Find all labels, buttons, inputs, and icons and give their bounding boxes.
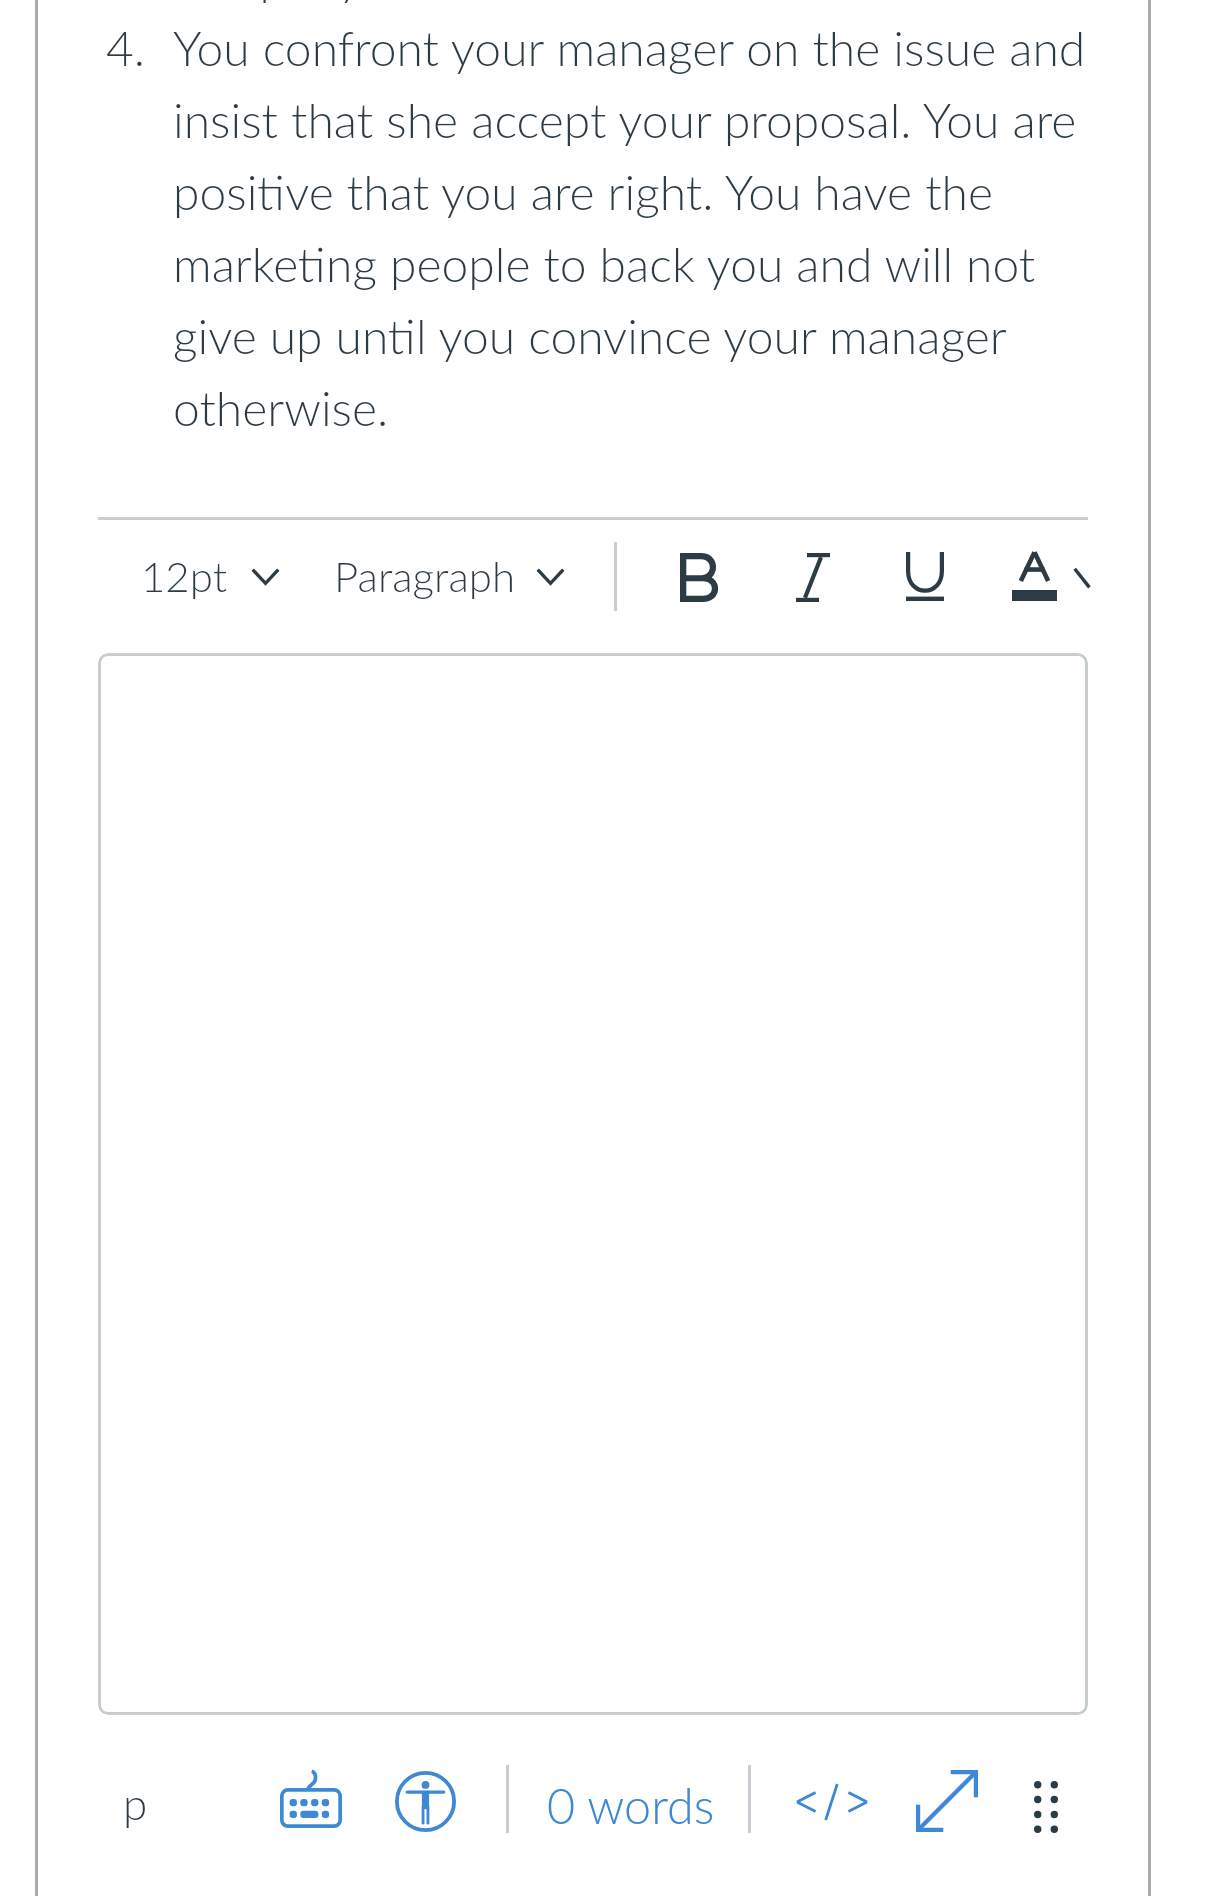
- button[interactable]: Text colour: [995, 536, 1086, 614]
- button[interactable]: Accessibility checker: [390, 1766, 460, 1836]
- button[interactable]: 12pt: [127, 544, 294, 608]
- button[interactable]: Italic: [774, 538, 852, 616]
- staticText: 12pt: [141, 551, 228, 601]
- staticText: 4.: [106, 19, 146, 77]
- button[interactable]: Underline: [886, 536, 964, 614]
- button[interactable]: More options: [1016, 1771, 1076, 1843]
- button[interactable]: p: [109, 1772, 162, 1834]
- button[interactable]: Bold: [660, 538, 738, 616]
- button[interactable]: Resize editor: [907, 1761, 987, 1841]
- button[interactable]: HTML editor: [780, 1770, 884, 1834]
- staticText: You confront your manager on the issue a…: [173, 19, 1093, 437]
- button[interactable]: 0 words: [533, 1776, 729, 1828]
- button[interactable]: Rich content editor: [98, 653, 1088, 1715]
- staticText: 0 words: [547, 1776, 715, 1828]
- staticText: p: [123, 1777, 148, 1830]
- button[interactable]: Paragraph: [320, 544, 579, 608]
- staticText: up it you: [233, 0, 415, 6]
- button[interactable]: Keyboard shortcuts: [271, 1765, 351, 1837]
- staticText: Paragraph: [334, 551, 516, 601]
